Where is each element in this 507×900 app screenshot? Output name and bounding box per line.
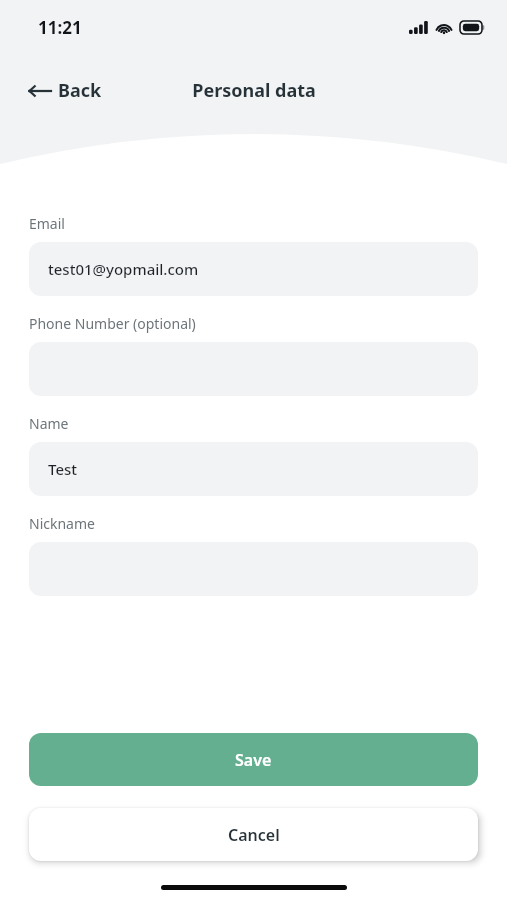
button[interactable]: Cancel — [29, 808, 478, 861]
staticText: test01@yopmail.com — [48, 259, 199, 279]
staticText: Phone Number (optional) — [29, 314, 196, 333]
staticText: Name — [29, 414, 69, 433]
staticText: Test — [48, 459, 78, 479]
staticText: Personal data — [192, 78, 316, 103]
staticText: Nickname — [29, 514, 95, 533]
staticText: Cancel — [228, 824, 280, 846]
button[interactable]: Back — [0, 72, 114, 109]
staticText: Back — [58, 78, 102, 103]
other: Back — [29, 84, 51, 98]
staticText: Email — [29, 214, 65, 233]
button[interactable]: test01@yopmail.com — [29, 242, 478, 296]
staticText: 11:21 — [38, 16, 82, 39]
button[interactable]: Test — [29, 442, 478, 496]
staticText: Save — [235, 749, 272, 771]
button[interactable]: Save — [29, 733, 478, 786]
